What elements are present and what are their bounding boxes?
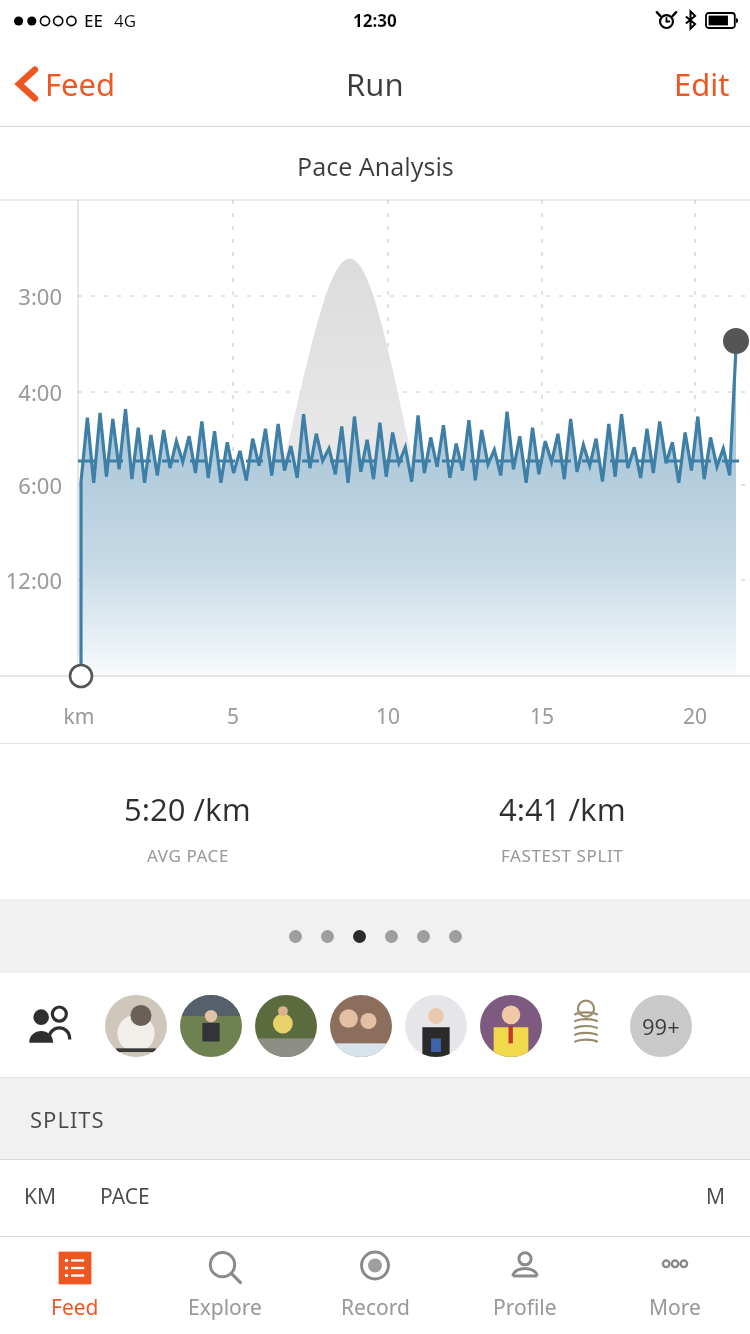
staticText: 4:00: [0, 377, 62, 407]
button[interactable]: KM: [0, 1160, 750, 1255]
staticText: Edit: [674, 63, 730, 105]
staticText: M: [706, 1182, 726, 1211]
button[interactable]: Explore: [150, 1237, 300, 1334]
button[interactable]: 99+: [630, 995, 692, 1057]
staticText: Feed: [45, 63, 116, 105]
button[interactable]: Athlete 2: [180, 995, 242, 1057]
staticText: 5: [193, 702, 273, 731]
staticText: 12:00: [0, 565, 62, 595]
staticText: Profile: [493, 1293, 557, 1322]
staticText: 12:30: [353, 9, 397, 32]
staticText: AVG PACE: [147, 844, 229, 867]
staticText: 3:00: [0, 281, 62, 311]
button[interactable]: Feed: [0, 55, 128, 113]
staticText: 5:20 /km: [124, 788, 251, 830]
button[interactable]: Athlete 3: [255, 995, 317, 1057]
button[interactable]: Kudos: [24, 1000, 76, 1052]
staticText: 4:41 /km: [499, 788, 626, 830]
staticText: 10: [348, 702, 428, 731]
staticText: Explore: [188, 1293, 262, 1322]
button[interactable]: Feed: [0, 1237, 150, 1334]
button[interactable]: Record: [300, 1237, 450, 1334]
button[interactable]: More: [600, 1237, 750, 1334]
button[interactable]: Page 1: [289, 930, 302, 943]
staticText: 99+: [642, 1011, 680, 1041]
button[interactable]: Edit: [654, 53, 750, 115]
button[interactable]: Athlete 1: [105, 995, 167, 1057]
staticText: KM: [24, 1182, 57, 1211]
staticText: Run: [346, 63, 404, 105]
staticText: Feed: [51, 1293, 99, 1322]
staticText: Pace Analysis: [297, 149, 454, 183]
button[interactable]: Athlete 4: [330, 995, 392, 1057]
button[interactable]: Page 2: [321, 930, 334, 943]
staticText: SPLITS: [30, 1104, 105, 1134]
staticText: More: [649, 1293, 701, 1322]
button[interactable]: Athlete 5: [405, 995, 467, 1057]
button[interactable]: Athlete 6: [480, 995, 542, 1057]
button[interactable]: Athlete 7: [555, 995, 617, 1057]
staticText: FASTEST SPLIT: [501, 844, 624, 867]
button[interactable]: Page 4: [385, 930, 398, 943]
staticText: Record: [341, 1293, 410, 1322]
staticText: km: [39, 702, 119, 731]
button[interactable]: Page 6: [449, 930, 462, 943]
button[interactable]: Profile: [450, 1237, 600, 1334]
staticText: 6:00: [0, 470, 62, 500]
staticText: 20: [655, 702, 735, 731]
staticText: EE: [84, 9, 103, 32]
staticText: 15: [502, 702, 582, 731]
button[interactable]: Page 5: [417, 930, 430, 943]
button[interactable]: Page 3: [353, 930, 366, 943]
staticText: 4G: [114, 9, 137, 32]
staticText: PACE: [100, 1182, 150, 1211]
